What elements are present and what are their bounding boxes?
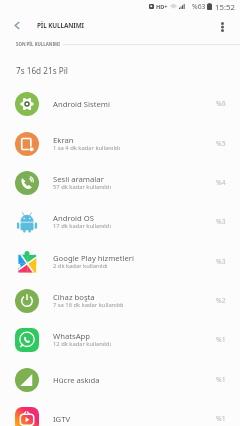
button[interactable]: Sesli aramalar <box>0 163 240 202</box>
staticText: PİL KULLANIMI <box>37 21 84 30</box>
staticText: 7s 16d 21s Pil <box>16 65 68 76</box>
staticText: 57 dk kadar kullanıldı <box>53 183 111 191</box>
staticText: %1 <box>216 335 226 344</box>
staticText: %1 <box>216 375 226 384</box>
staticText: 7 sa 16 dk kadar kullanıldı <box>53 301 124 309</box>
staticText: 15:52 <box>215 2 235 13</box>
button[interactable]: Cihaz boşta <box>0 281 240 320</box>
staticText: %63 <box>192 2 206 11</box>
staticText: %4 <box>216 178 226 187</box>
staticText: SON PİL KULLANIMI <box>16 41 60 47</box>
staticText: Sesli aramalar <box>53 174 104 184</box>
button[interactable]: Ekran <box>0 124 240 163</box>
staticText: 12 dk kadar kullanıldı <box>53 340 111 348</box>
button[interactable]: Android Sistemi <box>0 84 240 123</box>
staticText: %5 <box>216 139 226 148</box>
staticText: %1 <box>216 414 226 423</box>
staticText: %3 <box>216 257 226 266</box>
staticText: Android Sistemi <box>53 99 110 109</box>
staticText: %6 <box>216 99 226 108</box>
staticText: Android OS <box>53 213 94 223</box>
staticText: IGTV <box>53 414 71 424</box>
staticText: Google Play hizmetleri <box>53 253 134 263</box>
staticText: Cihaz boşta <box>53 292 95 302</box>
button[interactable]: IGTV <box>0 399 240 426</box>
staticText: %2 <box>216 296 226 305</box>
staticText: 1 sa 4 dk kadar kullanıldı <box>53 144 120 152</box>
staticText: 2 dk kadar kullanıldı <box>53 262 108 270</box>
staticText: HD+ <box>156 3 168 11</box>
button[interactable]: Android OS <box>0 202 240 241</box>
button[interactable]: Back <box>6 14 28 36</box>
staticText: 17 dk kadar kullanıldı <box>53 222 111 230</box>
button[interactable]: Google Play hizmetleri <box>0 242 240 281</box>
staticText: %3 <box>216 217 226 226</box>
button[interactable]: More options <box>210 15 234 39</box>
button[interactable]: Hücre askıda <box>0 360 240 399</box>
button[interactable]: WhatsApp <box>0 320 240 359</box>
staticText: Ekran <box>53 135 74 145</box>
staticText: Hücre askıda <box>53 375 100 385</box>
staticText: WhatsApp <box>53 331 91 341</box>
